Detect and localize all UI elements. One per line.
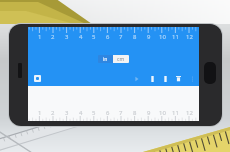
staticText: 9 [147,109,151,117]
staticText: 8 [133,109,137,117]
staticText: 1 [38,109,42,117]
staticText: 7 [119,109,123,117]
staticText: 5 [92,33,96,41]
staticText: 6 [106,109,110,117]
staticText: 6 [106,33,110,41]
staticText: 11 [172,109,179,117]
staticText: cm [117,56,125,63]
staticText: 10 [159,109,166,117]
staticText: 12 [186,109,193,117]
staticText: 11 [172,33,179,41]
staticText: 10 [159,33,166,41]
button[interactable]: Pin [160,74,171,83]
staticText: 5 [92,109,96,117]
button[interactable]: Menu [34,75,41,82]
button[interactable]: Delete [173,74,184,83]
staticText: 4 [79,109,83,117]
staticText: in [103,56,108,63]
staticText: 7 [119,33,123,41]
button[interactable]: Play [131,74,142,83]
button[interactable]: in [98,55,129,63]
staticText: 4 [79,33,83,41]
staticText: 2 [51,109,55,117]
button[interactable]: Bookmark [147,74,158,83]
staticText: 3 [65,33,69,41]
staticText: 9 [147,33,151,41]
staticText: 8 [133,33,137,41]
staticText: 1 [38,33,42,41]
staticText: 2 [51,33,55,41]
staticText: 12 [186,33,193,41]
button[interactable]: More options [187,74,198,83]
staticText: 3 [65,109,69,117]
